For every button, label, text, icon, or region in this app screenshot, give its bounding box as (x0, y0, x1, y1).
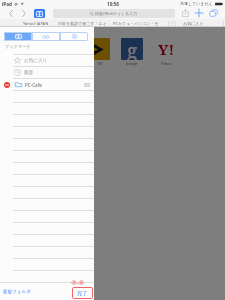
button[interactable]: PC-Cafe (0, 79, 94, 90)
button[interactable]: Bookmarks (4, 32, 32, 41)
staticText: Google (126, 61, 138, 66)
staticText: Yahoo! JAPAN (23, 21, 49, 26)
button[interactable]: 検索/Webサイト名入力 (53, 9, 175, 18)
button[interactable]: Show tabs (207, 7, 219, 19)
staticText: 新規フォルダ (3, 289, 31, 295)
button[interactable]: PCカフェ・パソコン・モバ... (113, 19, 165, 27)
staticText: お気に入り (183, 21, 204, 26)
staticText: PCカフェ・パソコン・モバ... (113, 21, 165, 26)
button[interactable]: 履歴 (0, 67, 94, 78)
staticText: ブックマーク (5, 44, 31, 49)
staticText: 10:58 (107, 1, 119, 7)
staticText: TM (97, 61, 102, 66)
button[interactable]: Shared links (60, 32, 88, 41)
button[interactable]: 完了 (72, 287, 93, 299)
staticText: お気に入り (24, 58, 48, 64)
button[interactable]: Reading list (170, 20, 176, 26)
staticText: Yahoo (161, 61, 171, 66)
button[interactable]: Forward (18, 8, 29, 19)
button[interactable]: TM (88, 38, 110, 66)
button[interactable]: 日常を英語で過ごす「エイゴ... (58, 19, 110, 27)
staticText: 履歴 (24, 70, 34, 76)
button[interactable]: Y! (155, 38, 177, 66)
staticText: 検索/Webサイト名入力 (95, 11, 138, 16)
button[interactable]: g (121, 38, 143, 66)
button[interactable]: Bookmarks (34, 9, 45, 18)
button[interactable]: 新規フォルダ (3, 289, 31, 295)
staticText: ⑤-⑤ (71, 278, 85, 287)
button[interactable]: Yahoo! JAPAN (16, 19, 56, 27)
button[interactable]: Reading list (32, 32, 60, 41)
staticText: 日常を英語で過ごす「エイゴ... (58, 21, 110, 26)
staticText: iPad (2, 1, 12, 7)
staticText: g (127, 38, 138, 60)
staticText: 充電していません (180, 1, 213, 6)
button[interactable]: New tab (193, 7, 205, 19)
staticText: Y! (158, 39, 175, 59)
staticText: PC-Cafe (25, 82, 42, 88)
button[interactable]: お気に入り (183, 19, 204, 27)
button[interactable]: お気に入り (0, 55, 94, 66)
button[interactable]: Share (179, 7, 191, 19)
staticText: 完了 (77, 290, 88, 297)
button[interactable]: Back (5, 8, 16, 19)
